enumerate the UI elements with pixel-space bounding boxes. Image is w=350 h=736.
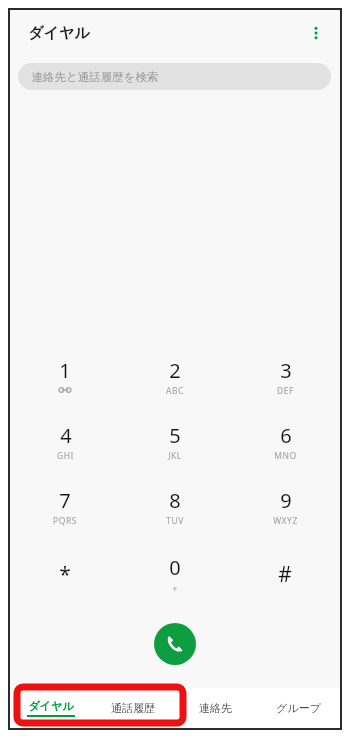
button[interactable]: # [230, 548, 340, 604]
button[interactable]: 9 [230, 481, 340, 537]
button[interactable]: ダイヤル [10, 688, 92, 728]
staticText: 1 [59, 357, 71, 384]
button[interactable]: 1 [10, 351, 120, 407]
staticText: GHI [57, 450, 74, 462]
button[interactable]: 2 [120, 351, 230, 407]
button[interactable]: * [10, 548, 120, 604]
button[interactable]: 通話履歴 [92, 688, 174, 728]
button[interactable]: 6 [230, 416, 340, 472]
staticText: グループ [276, 701, 321, 715]
button[interactable]: グループ [257, 688, 340, 728]
button[interactable]: 連絡先 [174, 688, 257, 728]
button[interactable]: More options [298, 15, 334, 51]
staticText: 3 [280, 357, 292, 384]
button[interactable]: 3 [230, 351, 340, 407]
staticText: 4 [60, 422, 72, 449]
staticText: 5 [169, 422, 181, 449]
staticText: + [172, 582, 178, 594]
staticText: DEF [277, 385, 294, 397]
staticText: ダイヤル [28, 24, 90, 43]
staticText: 8 [169, 487, 181, 514]
staticText: 0 [169, 554, 181, 581]
staticText: TUV [166, 515, 184, 527]
button[interactable]: 8 [120, 481, 230, 537]
staticText: MNO [274, 450, 297, 462]
button[interactable]: Call [154, 623, 196, 665]
staticText: 連絡先 [199, 701, 232, 715]
staticText: # [278, 560, 292, 589]
staticText: 2 [169, 357, 181, 384]
staticText: 6 [280, 422, 292, 449]
staticText: WXYZ [273, 515, 298, 527]
staticText: 9 [280, 487, 292, 514]
staticText: PQRS [53, 515, 77, 527]
staticText: JKL [168, 450, 182, 462]
staticText: 7 [59, 487, 71, 514]
button[interactable]: 4 [10, 416, 120, 472]
staticText: 通話履歴 [111, 701, 155, 715]
staticText: * [59, 560, 71, 589]
button[interactable]: 5 [120, 416, 230, 472]
staticText: ダイヤル [28, 699, 74, 713]
staticText: ABC [166, 385, 184, 397]
button[interactable]: 7 [10, 481, 120, 537]
button[interactable]: 0 [120, 548, 230, 604]
staticText: 連絡先と通話履歴を検索 [31, 70, 159, 84]
button[interactable]: 連絡先と通話履歴を検索 [18, 63, 331, 90]
